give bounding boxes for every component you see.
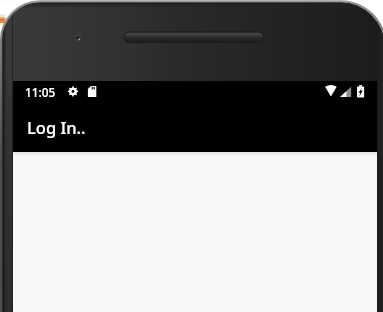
button[interactable]: Log In.. [13, 102, 377, 152]
staticText: Log In.. [27, 116, 86, 138]
staticText: 11:05 [25, 84, 56, 100]
